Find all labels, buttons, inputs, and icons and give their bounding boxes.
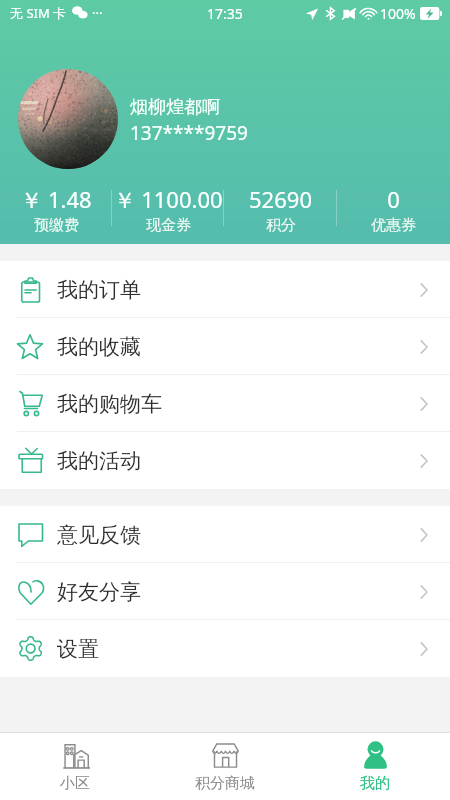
button[interactable]: 积分商城	[150, 733, 300, 800]
button[interactable]: 好友分享	[0, 563, 450, 620]
staticText: 0	[387, 184, 400, 214]
staticText: 17:35	[207, 4, 243, 23]
staticText: 好友分享	[57, 579, 141, 605]
staticText: 积分	[266, 216, 296, 232]
button[interactable]: 设置	[0, 620, 450, 677]
staticText: 意见反馈	[57, 522, 141, 548]
staticText: 我的活动	[57, 448, 141, 474]
button[interactable]: 我的购物车	[0, 375, 450, 432]
staticText: 优惠券	[371, 216, 416, 232]
button[interactable]: 我的	[300, 733, 450, 800]
staticText: 烟柳煌都啊	[130, 96, 220, 119]
staticText: 我的订单	[57, 277, 141, 303]
staticText: 我的购物车	[57, 391, 162, 417]
button[interactable]: 我的收藏	[0, 318, 450, 375]
button[interactable]: 我的订单	[0, 261, 450, 318]
staticText: ￥ 1.48	[20, 184, 92, 214]
staticText: ···	[92, 4, 103, 22]
staticText: 现金券	[146, 216, 191, 232]
staticText: 无 SIM 卡	[10, 4, 67, 22]
staticText: 我的收藏	[57, 334, 141, 360]
staticText: 52690	[249, 184, 312, 214]
staticText: 137****9759	[130, 120, 248, 146]
staticText: 预缴费	[34, 216, 79, 232]
button[interactable]: 我的活动	[0, 432, 450, 489]
staticText: 积分商城	[195, 774, 255, 793]
staticText: 100%	[380, 4, 416, 23]
staticText: ￥ 1100.00	[113, 184, 223, 214]
staticText: 设置	[57, 636, 99, 662]
staticText: 小区	[60, 774, 90, 793]
button[interactable]: 意见反馈	[0, 506, 450, 563]
button[interactable]: 小区	[0, 733, 150, 800]
staticText: 我的	[360, 774, 390, 793]
